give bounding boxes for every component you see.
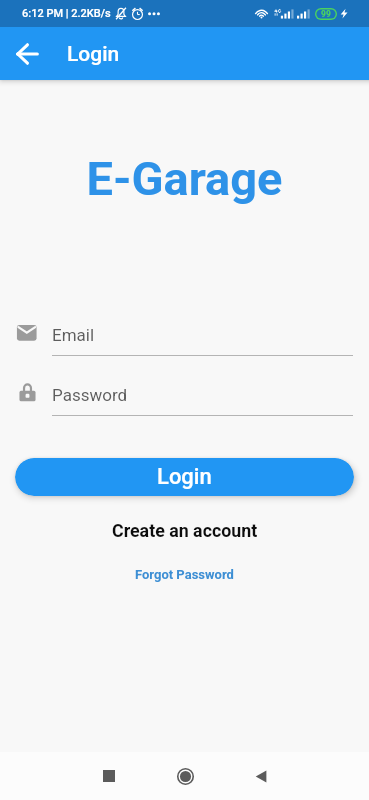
button[interactable]: Back <box>237 752 285 800</box>
staticText: Create an account <box>112 520 258 541</box>
button[interactable]: Home <box>161 752 209 800</box>
staticText: Email <box>52 325 95 345</box>
staticText: Forgot Password <box>135 567 234 582</box>
button[interactable]: Recent apps <box>85 752 133 800</box>
button[interactable]: Create an account <box>0 516 369 544</box>
button[interactable]: Login <box>15 458 354 496</box>
button[interactable]: Back <box>0 27 54 80</box>
staticText: Login <box>157 464 212 490</box>
staticText: Login <box>67 42 120 67</box>
staticText: 6:12 PM | 2.2KB/s <box>22 7 111 20</box>
staticText: Password <box>52 385 128 405</box>
staticText: 99 <box>321 9 331 19</box>
staticText: E-Garage <box>0 151 369 206</box>
button[interactable]: Forgot Password <box>0 563 369 585</box>
